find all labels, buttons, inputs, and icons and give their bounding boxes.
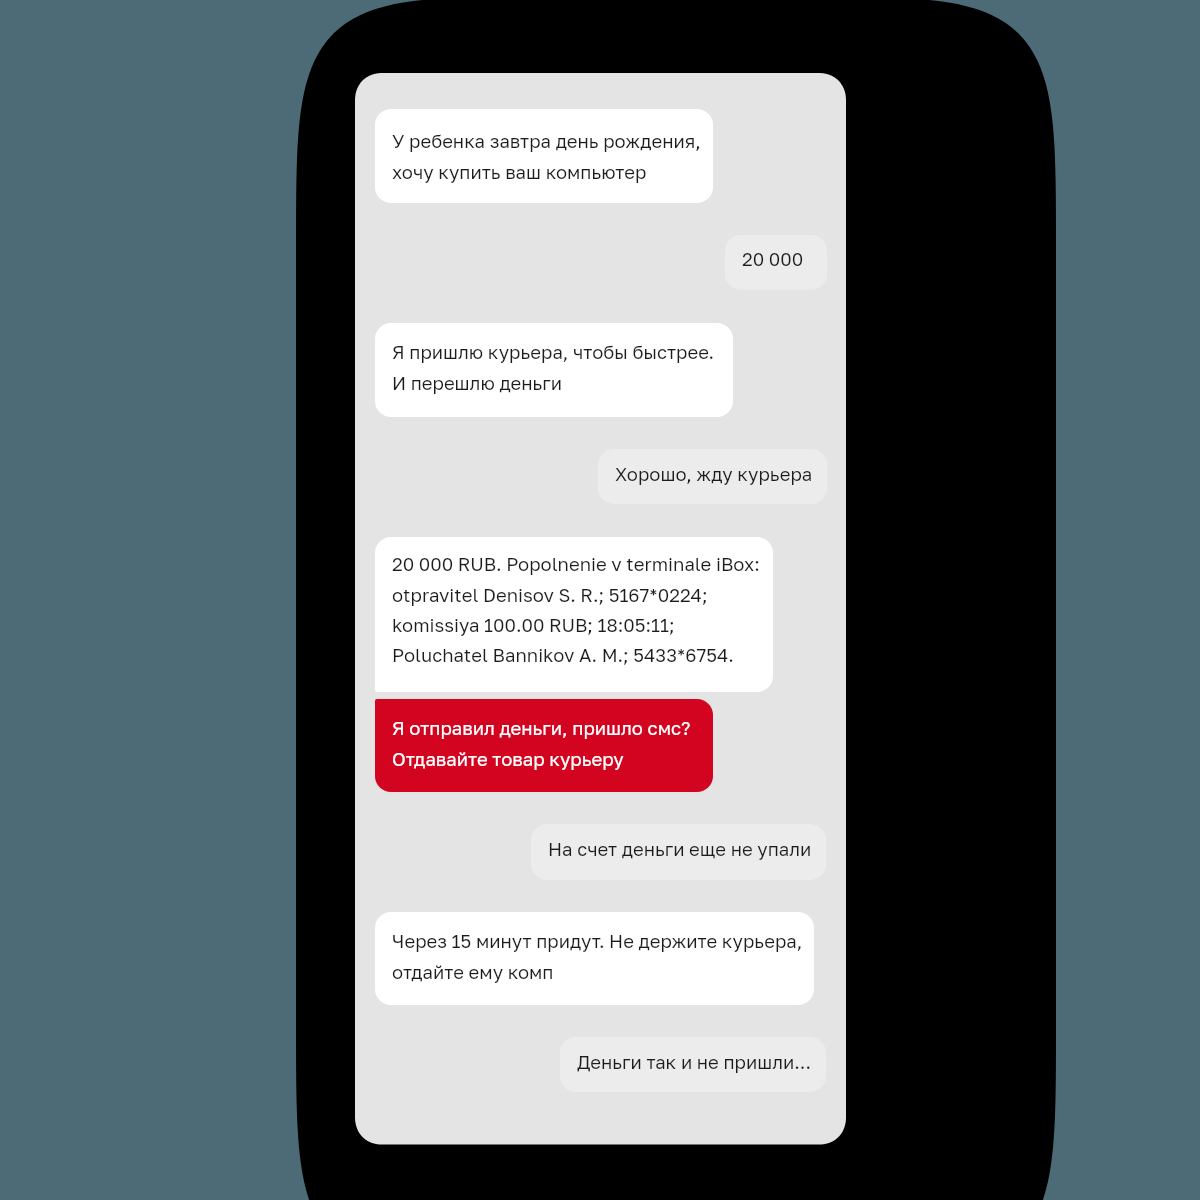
button[interactable]: У ребенка завтра день рождения, хочу куп… (375, 109, 713, 203)
button[interactable]: Я отправил деньги, пришло смс? Отдавайте… (375, 699, 713, 792)
button[interactable]: 20 000 RUB. Popolnenie v terminale iBox:… (375, 537, 773, 692)
staticText: У ребенка завтра день рождения, хочу куп… (392, 130, 701, 183)
staticText: Я отправил деньги, пришло смс? Отдавайте… (392, 717, 691, 770)
button[interactable]: Хорошо, жду курьера (598, 449, 827, 504)
button[interactable]: Деньги так и не пришли... (560, 1037, 826, 1092)
button[interactable]: Через 15 минут придут. Не держите курьер… (375, 912, 814, 1005)
staticText: 20 000 (742, 248, 804, 270)
button[interactable]: Я пришлю курьера, чтобы быстрее. И переш… (375, 323, 733, 417)
staticText: На счет деньги еще не упали (548, 838, 812, 860)
button[interactable]: На счет деньги еще не упали (531, 824, 826, 880)
staticText: Хорошо, жду курьера (615, 463, 813, 485)
staticText: Деньги так и не пришли... (577, 1051, 811, 1073)
staticText: Через 15 минут придут. Не держите курьер… (392, 930, 803, 983)
staticText: Я пришлю курьера, чтобы быстрее. И переш… (392, 341, 715, 394)
staticText: 20 000 RUB. Popolnenie v terminale iBox:… (392, 553, 760, 666)
button[interactable]: 20 000 (725, 235, 827, 290)
